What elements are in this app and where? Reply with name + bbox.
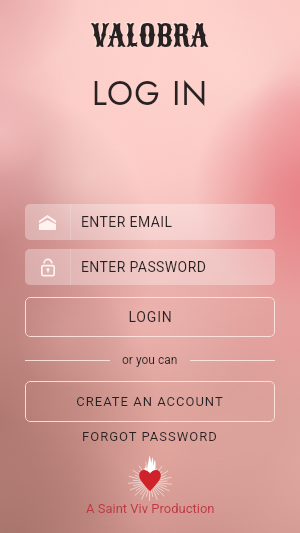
button[interactable]: FORGOT PASSWORD [25,422,275,450]
staticText: ENTER PASSWORD [81,259,207,275]
staticText: VALOBRA [90,15,208,55]
button[interactable]: Password [25,249,275,285]
staticText: FORGOT PASSWORD [82,429,218,444]
staticText: CREATE AN ACCOUNT [76,394,224,409]
button[interactable]: CREATE AN ACCOUNT [25,381,275,422]
staticText: or you can [122,353,178,367]
staticText: LOGIN [128,309,173,325]
other: Password [25,249,70,285]
other: Email [25,204,70,240]
staticText: ENTER EMAIL [81,214,173,230]
staticText: A Saint Viv Production [86,501,215,516]
button[interactable]: Email [25,204,275,240]
staticText: LOG IN [92,70,209,116]
staticText: VALOBRA [91,16,209,56]
button[interactable]: LOGIN [25,297,275,337]
